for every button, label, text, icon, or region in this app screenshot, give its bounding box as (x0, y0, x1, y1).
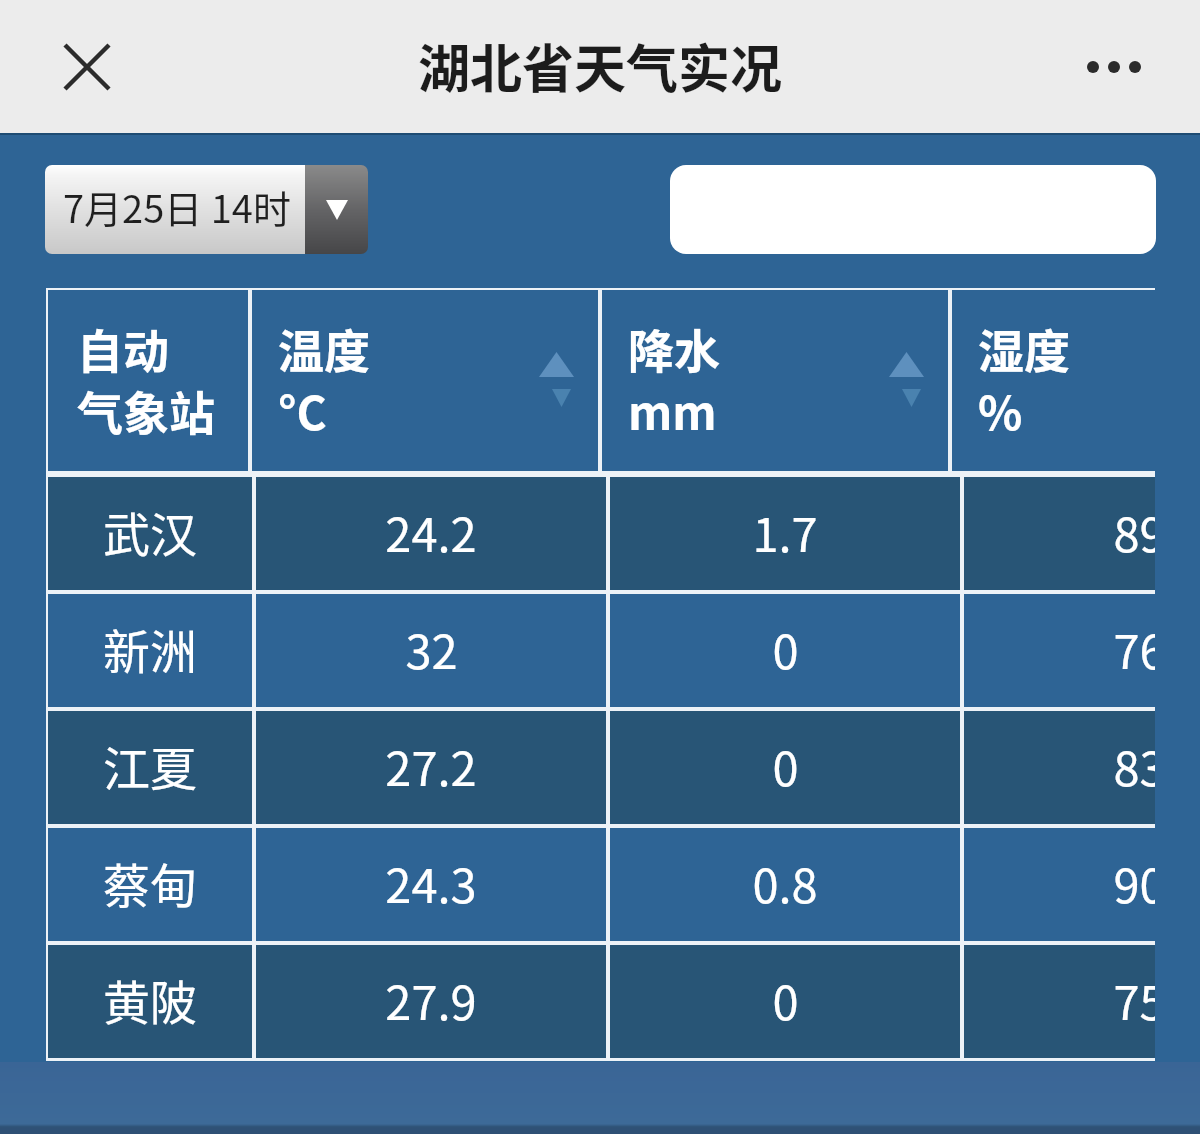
button[interactable]: 0 (610, 594, 960, 707)
staticText: 蔡甸 (103, 848, 197, 916)
staticText: 90 (1113, 848, 1155, 916)
staticText: 7月25日 14时 (63, 179, 291, 234)
staticText: 24.3 (385, 848, 477, 916)
button[interactable]: Sort column (602, 290, 952, 471)
button[interactable]: Sort column (252, 290, 602, 471)
staticText: 湿度 (978, 315, 1070, 382)
staticText: 黄陂 (103, 965, 197, 1033)
staticText: 1.7 (752, 497, 818, 565)
button[interactable]: 75 (964, 945, 1155, 1058)
staticText: 27.2 (385, 731, 477, 799)
button[interactable]: 黄陂 (48, 945, 252, 1058)
button[interactable]: Select date and time (45, 165, 368, 254)
staticText: 气象站 (77, 377, 215, 444)
button[interactable]: Search station (670, 165, 1156, 254)
staticText: 0 (772, 965, 799, 1033)
staticText: °C (278, 377, 327, 444)
button[interactable]: 新洲 (48, 594, 252, 707)
staticText: 24.2 (385, 497, 477, 565)
staticText: 0 (772, 614, 799, 682)
button[interactable]: More options (1087, 22, 1141, 112)
staticText: 江夏 (103, 731, 197, 799)
button[interactable]: 89 (964, 477, 1155, 590)
staticText: 武汉 (103, 497, 197, 565)
button[interactable]: 27.2 (256, 711, 606, 824)
staticText: 75 (1113, 965, 1155, 1033)
button[interactable]: 76 (964, 594, 1155, 707)
button[interactable]: Sort column (952, 290, 1155, 471)
staticText: 降水 (628, 315, 720, 382)
button[interactable]: 蔡甸 (48, 828, 252, 941)
staticText: 83 (1113, 731, 1155, 799)
staticText: 0 (772, 731, 799, 799)
button[interactable]: 自动 (48, 290, 252, 471)
button[interactable]: 1.7 (610, 477, 960, 590)
staticText: 89 (1113, 497, 1155, 565)
button[interactable]: 0 (610, 945, 960, 1058)
staticText: mm (628, 377, 717, 444)
button[interactable]: 江夏 (48, 711, 252, 824)
button[interactable]: 0.8 (610, 828, 960, 941)
staticText: % (978, 377, 1023, 444)
button[interactable]: 武汉 (48, 477, 252, 590)
button[interactable]: 0 (610, 711, 960, 824)
staticText: 27.9 (385, 965, 477, 1033)
staticText: 32 (405, 614, 458, 682)
button[interactable]: Close (42, 22, 132, 112)
button[interactable]: 24.2 (256, 477, 606, 590)
staticText: 温度 (278, 315, 370, 382)
staticText: 新洲 (103, 614, 197, 682)
button[interactable]: 24.3 (256, 828, 606, 941)
staticText: 湖北省天气实况 (418, 28, 783, 103)
staticText: 0.8 (752, 848, 818, 916)
staticText: 76 (1113, 614, 1155, 682)
button[interactable]: 83 (964, 711, 1155, 824)
button[interactable]: 27.9 (256, 945, 606, 1058)
staticText: 自动 (77, 315, 169, 382)
button[interactable]: 90 (964, 828, 1155, 941)
button[interactable]: 32 (256, 594, 606, 707)
